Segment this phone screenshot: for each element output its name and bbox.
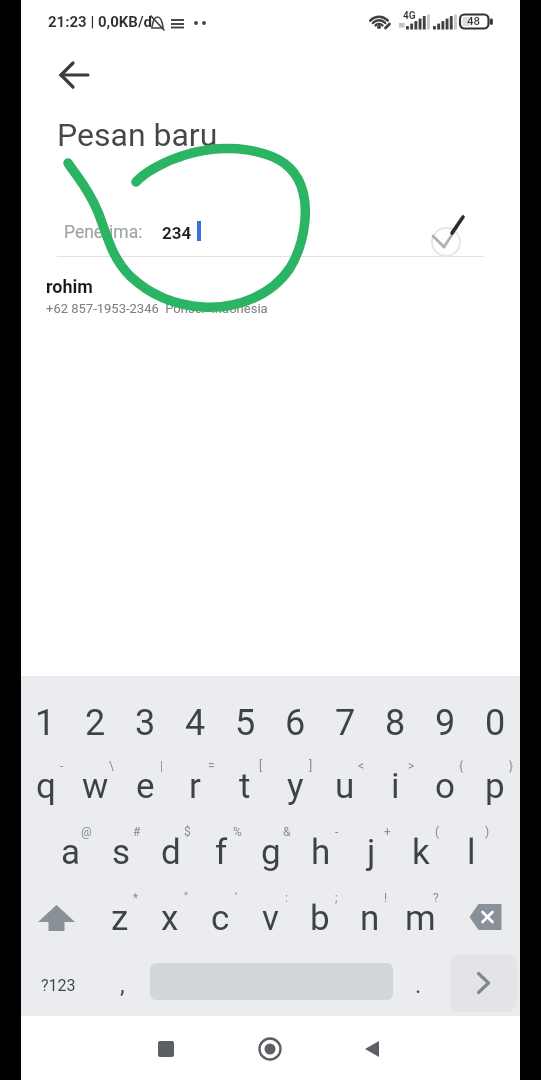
staticText: - bbox=[335, 825, 339, 839]
staticText: 0 bbox=[485, 702, 506, 744]
button[interactable]: 0 bbox=[470, 693, 520, 753]
button[interactable] bbox=[238, 1016, 302, 1080]
staticText: \ bbox=[109, 759, 114, 773]
button[interactable]: k bbox=[396, 819, 446, 885]
button[interactable]: d bbox=[146, 819, 196, 885]
button[interactable]: 9 bbox=[420, 693, 470, 753]
staticText: a bbox=[61, 832, 81, 873]
button[interactable]: y bbox=[270, 753, 320, 819]
button[interactable]: r bbox=[170, 753, 220, 819]
staticText: ? bbox=[433, 891, 439, 905]
staticText: > bbox=[408, 759, 415, 773]
staticText: 4G bbox=[403, 10, 416, 22]
button[interactable] bbox=[445, 885, 520, 951]
button[interactable]: o bbox=[420, 753, 470, 819]
button[interactable] bbox=[450, 954, 517, 1012]
button[interactable]: e bbox=[120, 753, 170, 819]
button[interactable]: 5 bbox=[220, 693, 270, 753]
staticText: g bbox=[261, 832, 281, 873]
staticText: # bbox=[133, 825, 141, 839]
staticText: Penerima: bbox=[64, 222, 143, 243]
staticText: * bbox=[133, 891, 139, 905]
staticText: u bbox=[335, 766, 355, 807]
button[interactable]: l bbox=[446, 819, 496, 885]
button[interactable]: h bbox=[296, 819, 346, 885]
button[interactable]: c bbox=[195, 885, 245, 951]
button[interactable]: m bbox=[395, 885, 445, 951]
staticText: % bbox=[233, 825, 242, 839]
button[interactable]: 4 bbox=[170, 693, 220, 753]
staticText: i bbox=[391, 766, 400, 807]
button[interactable]: rohim bbox=[41, 272, 501, 322]
button[interactable]: x bbox=[145, 885, 195, 951]
button[interactable]: i bbox=[370, 753, 420, 819]
button[interactable]: j bbox=[346, 819, 396, 885]
button[interactable]: 6 bbox=[270, 693, 320, 753]
staticText: ) bbox=[485, 825, 490, 839]
staticText: ; bbox=[335, 891, 338, 905]
button[interactable]: p bbox=[470, 753, 520, 819]
staticText: + bbox=[384, 825, 391, 839]
button[interactable] bbox=[134, 1016, 198, 1080]
button[interactable]: 1 bbox=[21, 693, 70, 753]
staticText: o bbox=[435, 766, 455, 807]
staticText: . bbox=[415, 971, 422, 999]
staticText: } bbox=[509, 759, 514, 773]
staticText: 6 bbox=[285, 702, 306, 744]
staticText: : bbox=[285, 891, 288, 905]
button[interactable] bbox=[21, 885, 95, 951]
staticText: s bbox=[112, 832, 131, 873]
staticText: & bbox=[283, 825, 291, 839]
button[interactable]: v bbox=[245, 885, 295, 951]
button[interactable]: 8 bbox=[370, 693, 420, 753]
staticText: v bbox=[262, 898, 279, 939]
button[interactable]: ?123 bbox=[31, 954, 86, 1016]
staticText: = bbox=[208, 759, 215, 773]
staticText: 7 bbox=[335, 702, 356, 744]
staticText: w bbox=[82, 766, 109, 807]
staticText: < bbox=[358, 759, 365, 773]
staticText: l bbox=[467, 832, 476, 873]
button[interactable] bbox=[340, 1016, 404, 1080]
staticText: { bbox=[459, 759, 464, 773]
staticText: ] bbox=[309, 759, 313, 773]
button[interactable]: z bbox=[95, 885, 145, 951]
staticText: t bbox=[239, 766, 251, 807]
button[interactable]: b bbox=[295, 885, 345, 951]
button[interactable]: u bbox=[320, 753, 370, 819]
staticText: n bbox=[360, 898, 380, 939]
staticText: 3 bbox=[135, 702, 156, 744]
button[interactable]: f bbox=[196, 819, 246, 885]
staticText: r bbox=[189, 766, 201, 807]
button[interactable]: 3 bbox=[120, 693, 170, 753]
button[interactable]: 2 bbox=[70, 693, 120, 753]
staticText: h bbox=[311, 832, 331, 873]
button[interactable]: q bbox=[21, 753, 70, 819]
staticText: @ bbox=[81, 825, 92, 839]
staticText: q bbox=[36, 766, 56, 807]
button[interactable]: a bbox=[45, 819, 96, 885]
staticText: k bbox=[412, 832, 430, 873]
staticText: x bbox=[161, 898, 179, 939]
button[interactable]: t bbox=[220, 753, 270, 819]
staticText: e bbox=[136, 766, 155, 807]
staticText: b bbox=[310, 898, 330, 939]
staticText: j bbox=[367, 832, 376, 873]
button[interactable]: g bbox=[246, 819, 296, 885]
staticText: | bbox=[160, 759, 163, 773]
staticText: f bbox=[215, 832, 228, 873]
staticText: 2 bbox=[85, 702, 106, 744]
staticText: rohim bbox=[46, 276, 93, 297]
button[interactable]: , bbox=[97, 954, 147, 1016]
button[interactable]: 7 bbox=[320, 693, 370, 753]
staticText: [ bbox=[259, 759, 263, 773]
staticText: " bbox=[184, 891, 188, 905]
staticText: 1 bbox=[35, 702, 56, 744]
staticText: y bbox=[287, 766, 304, 807]
button[interactable]: s bbox=[96, 819, 146, 885]
staticText: d bbox=[161, 832, 181, 873]
button[interactable]: n bbox=[345, 885, 395, 951]
button[interactable]: w bbox=[70, 753, 120, 819]
button[interactable]: . bbox=[395, 954, 441, 1016]
